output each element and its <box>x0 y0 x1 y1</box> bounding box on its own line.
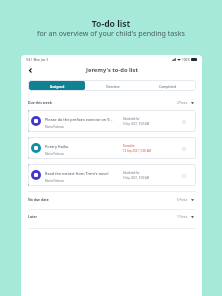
staticText: 9:41 Mon Jun 3 <box>26 58 48 62</box>
staticText: 2 Posts <box>177 101 188 105</box>
staticText: Please do the prefixes exercise on 9... <box>45 117 113 122</box>
staticText: Maria Pedroza <box>45 179 64 183</box>
staticText: 5 Sep 2021, 9:00 AM <box>123 122 150 126</box>
staticText: Scheduled for <box>123 117 140 120</box>
staticText: 13 Sep 2021, 9:00 AM <box>123 149 151 153</box>
button[interactable]: Please do the prefixes exercise on 9... <box>28 110 196 132</box>
button[interactable]: Overdue <box>85 81 140 90</box>
staticText: Scheduled for <box>123 171 140 174</box>
staticText: Later <box>28 214 37 219</box>
staticText: Read the extract from Trent's novel <box>45 171 109 176</box>
staticText: Maria Pedroza <box>45 152 64 156</box>
button[interactable]: Read the extract from Trent's novel <box>28 164 196 186</box>
staticText: 1 Posts <box>177 215 188 219</box>
staticText: Jeremy's to-do list <box>86 66 138 74</box>
staticText: 5 Sep 2021, 9:00 AM <box>123 176 150 180</box>
staticText: Turned in <box>123 144 135 147</box>
button[interactable]: Due this week <box>28 97 196 108</box>
staticText: 100% <box>182 58 190 62</box>
staticText: Assigned <box>50 84 65 88</box>
staticText: Overdue <box>106 84 120 88</box>
staticText: Completed <box>159 84 177 88</box>
staticText: Due this week <box>28 100 52 105</box>
staticText: 6 Posts <box>177 198 188 202</box>
button[interactable]: Mark complete <box>181 119 186 124</box>
staticText: To-do list <box>0 18 222 30</box>
button[interactable]: Completed <box>140 81 195 90</box>
button[interactable]: Later <box>28 211 196 222</box>
staticText: for an overview of your child's pending … <box>0 28 222 38</box>
staticText: No due date <box>28 197 49 202</box>
button[interactable]: No due date <box>28 194 196 205</box>
button[interactable]: Mark complete <box>181 146 186 151</box>
button[interactable]: Mark complete <box>181 173 186 178</box>
staticText: Poetry Haiku <box>45 144 69 149</box>
button[interactable]: Assigned <box>29 81 85 90</box>
button[interactable]: Back <box>25 65 35 75</box>
button[interactable]: Poetry Haiku <box>28 137 196 159</box>
staticText: Maria Pedroza <box>45 125 64 129</box>
